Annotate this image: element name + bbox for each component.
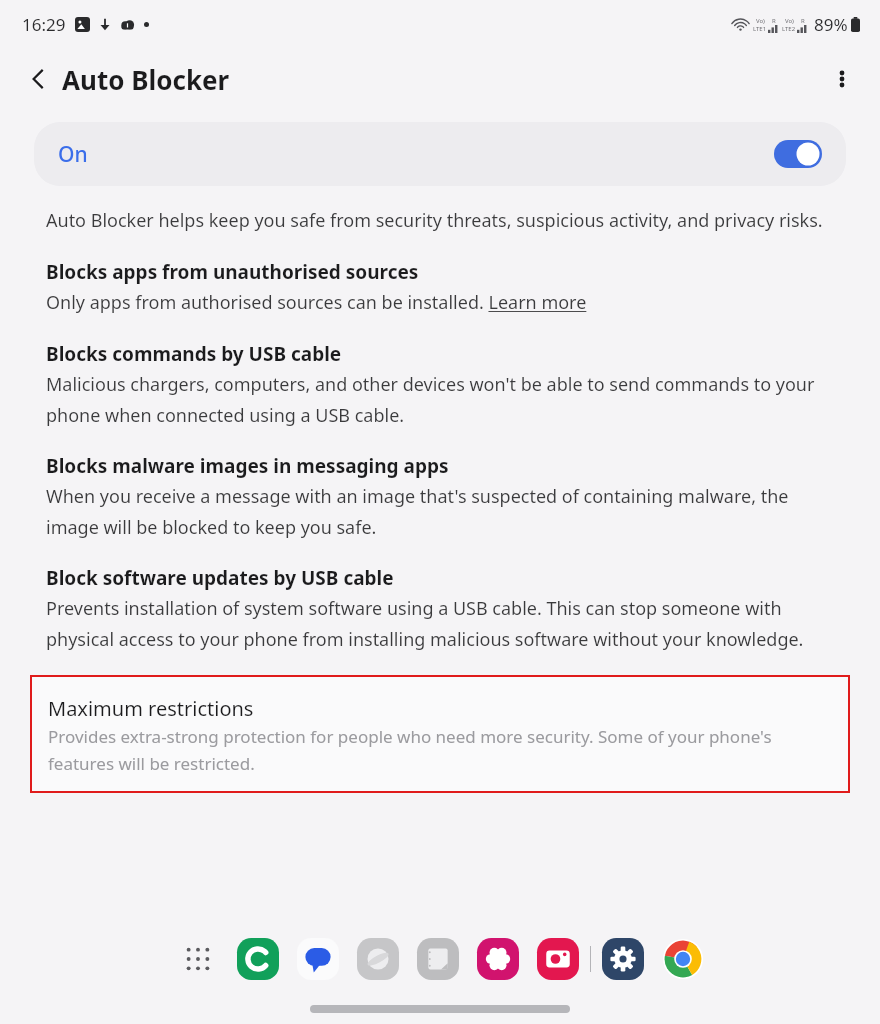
staticText: Auto Blocker xyxy=(62,62,230,97)
staticText: Block software updates by USB cable xyxy=(46,565,394,591)
button[interactable]: Settings xyxy=(601,937,645,981)
staticText: Prevents installation of system software… xyxy=(46,596,834,651)
button[interactable]: On xyxy=(34,122,846,186)
button[interactable]: Apps xyxy=(176,937,220,981)
button[interactable]: Messages xyxy=(296,937,340,981)
staticText: LTE1 xyxy=(753,25,767,33)
button[interactable]: Maximum restrictions xyxy=(30,675,850,793)
staticText: Auto Blocker helps keep you safe from se… xyxy=(46,208,823,233)
staticText: Maximum restrictions xyxy=(48,695,254,722)
staticText: Blocks malware images in messaging apps xyxy=(46,453,449,479)
staticText: Provides extra-strong protection for peo… xyxy=(48,725,832,775)
button[interactable]: Gallery xyxy=(476,937,520,981)
button[interactable]: Camera xyxy=(536,937,580,981)
staticText: Blocks apps from unauthorised sources xyxy=(46,259,419,285)
staticText: On xyxy=(58,140,88,169)
staticText: Vo) xyxy=(785,17,794,25)
staticText: Malicious chargers, computers, and other… xyxy=(46,372,834,427)
staticText: When you receive a message with an image… xyxy=(46,484,834,539)
staticText: Only apps from authorised sources can be… xyxy=(46,290,587,315)
button[interactable]: More options xyxy=(818,55,866,103)
button[interactable]: Phone xyxy=(236,937,280,981)
staticText: 16:29 xyxy=(22,13,66,36)
button[interactable]: Internet xyxy=(356,937,400,981)
staticText: Vo) xyxy=(756,17,765,25)
button[interactable]: Back xyxy=(14,55,62,103)
staticText: R xyxy=(801,17,805,25)
staticText: 89% xyxy=(814,13,848,36)
button[interactable]: Notes xyxy=(416,937,460,981)
staticText: LTE2 xyxy=(782,25,796,33)
staticText: Blocks commands by USB cable xyxy=(46,341,342,367)
staticText: R xyxy=(772,17,776,25)
button[interactable]: Chrome xyxy=(661,937,705,981)
